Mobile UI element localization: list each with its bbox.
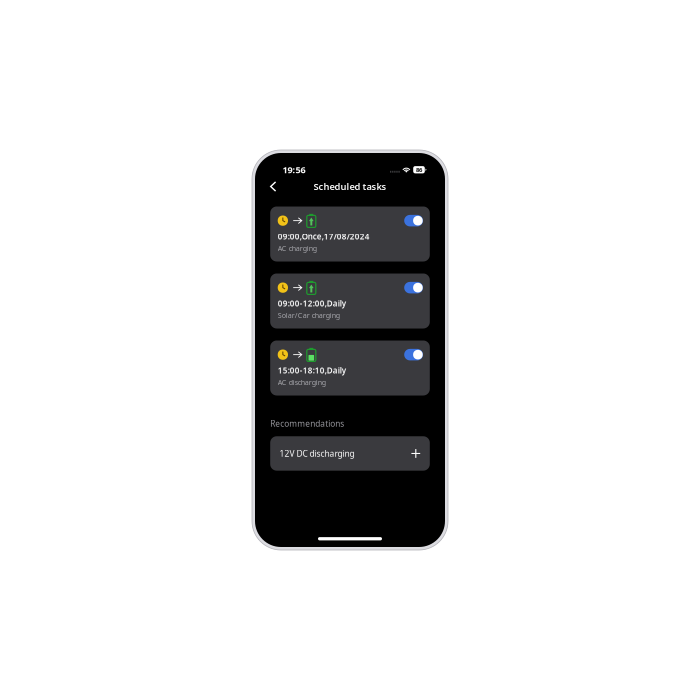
- staticText: Scheduled tasks: [313, 180, 386, 193]
- button[interactable]: 09:00,Once,17/08/2024: [270, 206, 430, 261]
- staticText: 09:00-12:00,Daily: [278, 298, 346, 309]
- button[interactable]: 09:00-12:00,Daily: [270, 273, 430, 328]
- staticText: AC charging: [278, 243, 317, 253]
- staticText: 15:00-18:10,Daily: [278, 365, 346, 376]
- staticText: AC discharging: [278, 377, 326, 387]
- button[interactable]: 15:00-18:10,Daily: [270, 340, 430, 395]
- staticText: 19:56: [282, 164, 305, 176]
- staticText: Recommendations: [270, 418, 344, 429]
- button[interactable]: 12V DC discharging: [270, 436, 430, 471]
- staticText: 86: [416, 166, 422, 174]
- staticText: 09:00,Once,17/08/2024: [278, 231, 370, 242]
- staticText: Solar/Car charging: [278, 310, 340, 320]
- button[interactable]: Back: [265, 177, 281, 196]
- staticText: 12V DC discharging: [280, 448, 355, 459]
